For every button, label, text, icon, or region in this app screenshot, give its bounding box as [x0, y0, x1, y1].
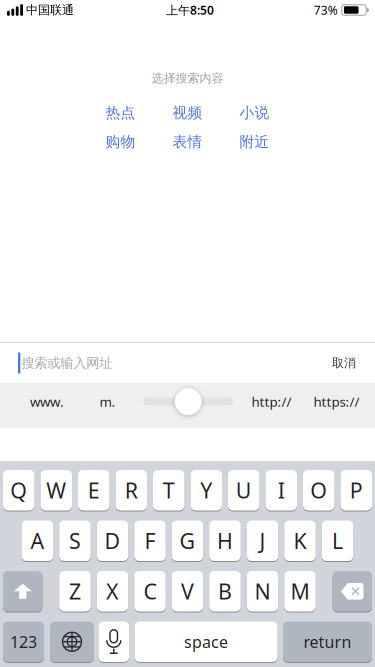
- staticText: m.: [99, 393, 115, 410]
- staticText: 视频: [172, 104, 202, 122]
- staticText: S: [69, 527, 81, 555]
- button[interactable]: T: [153, 470, 184, 510]
- staticText: 表情: [172, 133, 202, 151]
- button[interactable]: m.: [99, 393, 115, 410]
- button[interactable]: M: [284, 571, 316, 611]
- staticText: J: [259, 527, 265, 555]
- button[interactable]: 热点: [105, 104, 135, 122]
- staticText: C: [143, 577, 156, 605]
- button[interactable]: Slider: [175, 388, 202, 415]
- staticText: 搜索或输入网址: [21, 355, 112, 371]
- button[interactable]: P: [340, 470, 372, 510]
- button[interactable]: W: [40, 470, 72, 510]
- button[interactable]: F: [134, 520, 166, 561]
- button[interactable]: S: [59, 520, 91, 561]
- button[interactable]: 搜索或输入网址: [0, 352, 112, 373]
- button[interactable]: https://: [313, 393, 359, 410]
- button[interactable]: U: [228, 470, 259, 510]
- button[interactable]: 附近: [239, 133, 269, 151]
- staticText: H: [217, 527, 233, 555]
- staticText: Y: [200, 476, 212, 504]
- staticText: R: [125, 476, 138, 504]
- button[interactable]: L: [322, 520, 353, 561]
- button[interactable]: return: [283, 621, 372, 662]
- staticText: X: [106, 577, 119, 605]
- staticText: Z: [69, 577, 81, 605]
- staticText: http://: [251, 393, 291, 410]
- button[interactable]: J: [247, 520, 278, 561]
- button[interactable]: 123: [3, 621, 44, 662]
- button[interactable]: http://: [251, 393, 291, 410]
- button[interactable]: Next keyboard: [50, 621, 94, 662]
- button[interactable]: K: [284, 520, 316, 561]
- staticText: space: [184, 631, 228, 652]
- button[interactable]: N: [247, 571, 278, 611]
- staticText: G: [179, 527, 195, 555]
- staticText: M: [290, 577, 309, 605]
- staticText: D: [104, 527, 120, 555]
- staticText: T: [163, 476, 175, 504]
- button[interactable]: O: [303, 470, 334, 510]
- staticText: www.: [30, 393, 64, 410]
- staticText: W: [46, 476, 66, 504]
- staticText: O: [310, 476, 327, 504]
- staticText: 小说: [239, 104, 269, 122]
- staticText: 123: [10, 631, 37, 652]
- button[interactable]: D: [97, 520, 128, 561]
- button[interactable]: V: [172, 571, 203, 611]
- button[interactable]: G: [172, 520, 203, 561]
- staticText: P: [350, 476, 363, 504]
- staticText: V: [181, 577, 194, 605]
- button[interactable]: 小说: [239, 104, 269, 122]
- staticText: 购物: [105, 133, 135, 151]
- staticText: K: [293, 527, 306, 555]
- staticText: E: [88, 476, 100, 504]
- button[interactable]: B: [209, 571, 241, 611]
- staticText: A: [30, 527, 44, 555]
- staticText: L: [332, 527, 343, 555]
- staticText: 中国联通: [26, 3, 74, 17]
- staticText: Q: [10, 476, 27, 504]
- staticText: return: [303, 631, 351, 652]
- staticText: https://: [313, 393, 359, 410]
- button[interactable]: X: [97, 571, 128, 611]
- button[interactable]: 表情: [172, 133, 202, 151]
- staticText: 73%: [314, 2, 338, 18]
- button[interactable]: space: [134, 621, 277, 662]
- button[interactable]: 取消: [332, 356, 375, 370]
- staticText: 上午8:50: [166, 2, 214, 18]
- button[interactable]: www.: [30, 393, 64, 410]
- button[interactable]: Q: [3, 470, 34, 510]
- staticText: 附近: [239, 133, 269, 151]
- staticText: F: [144, 527, 155, 555]
- button[interactable]: 视频: [172, 104, 202, 122]
- button[interactable]: I: [265, 470, 297, 510]
- button[interactable]: Delete: [332, 571, 372, 611]
- button[interactable]: 购物: [105, 133, 135, 151]
- button[interactable]: A: [22, 520, 53, 561]
- staticText: B: [218, 577, 232, 605]
- button[interactable]: C: [134, 571, 166, 611]
- button[interactable]: Z: [59, 571, 91, 611]
- button[interactable]: R: [115, 470, 147, 510]
- staticText: I: [278, 476, 285, 504]
- button[interactable]: Y: [190, 470, 222, 510]
- button[interactable]: Dictate: [98, 621, 129, 662]
- button[interactable]: H: [209, 520, 241, 561]
- staticText: 选择搜索内容: [151, 71, 223, 86]
- staticText: N: [254, 577, 270, 605]
- button[interactable]: Shift: [3, 571, 42, 611]
- staticText: 取消: [332, 356, 356, 370]
- staticText: U: [236, 476, 252, 504]
- button[interactable]: E: [78, 470, 109, 510]
- staticText: 热点: [105, 104, 135, 122]
